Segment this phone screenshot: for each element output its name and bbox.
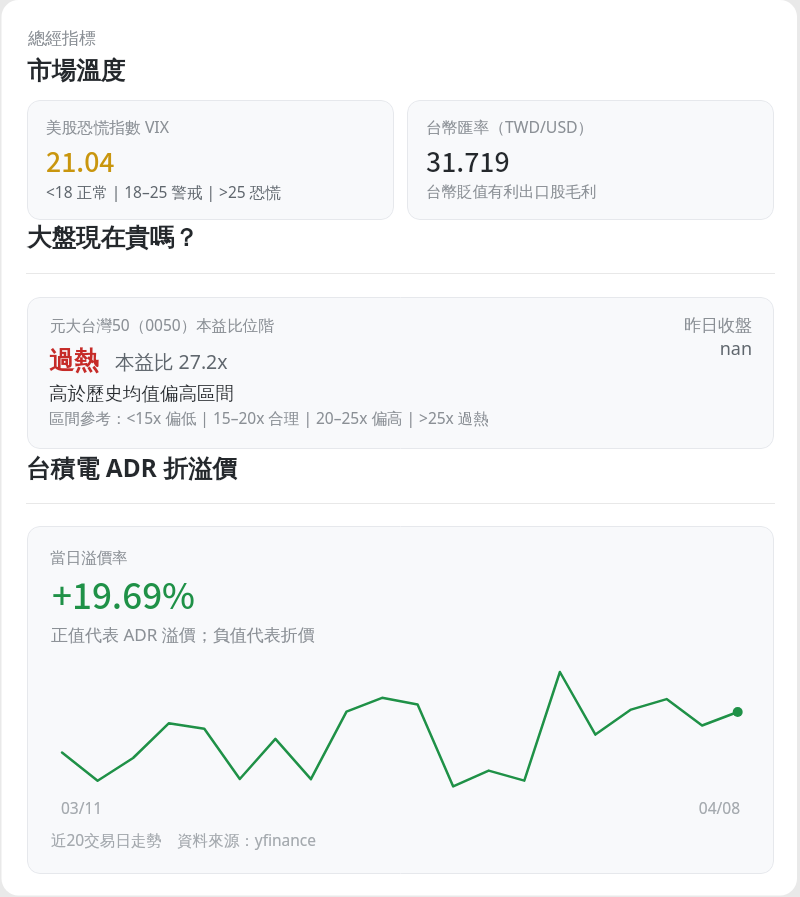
staticText: 台幣匯率（TWD/USD）	[426, 116, 594, 138]
staticText: 大盤現在貴嗎？	[27, 222, 199, 253]
button[interactable]: 台幣匯率 TWD/USD 31.719	[407, 100, 774, 220]
staticText: 本益比 27.2x	[115, 348, 228, 375]
staticText: 台幣貶值有利出口股毛利	[426, 182, 597, 202]
staticText: 過熱	[49, 345, 99, 376]
staticText: 正值代表 ADR 溢價；負值代表折價	[51, 623, 315, 646]
staticText: 區間參考：<15x 偏低 | 15–20x 合理 | 20–25x 偏高 | >…	[49, 407, 489, 428]
staticText: 當日溢價率	[50, 548, 128, 568]
staticText: +19.69%	[52, 569, 195, 625]
button[interactable]: 台積電 ADR 當日溢價率 +19.69%	[27, 526, 774, 874]
staticText: 市場溫度	[27, 55, 125, 86]
staticText: 21.04	[46, 141, 115, 184]
staticText: 近20交易日走勢 資料來源：yfinance	[51, 829, 317, 850]
staticText: 04/08	[540, 797, 740, 818]
staticText: <18 正常 | 18–25 警戒 | >25 恐慌	[46, 181, 281, 202]
staticText: 高於歷史均值偏高區間	[49, 382, 234, 405]
staticText: 元大台灣50（0050）本益比位階	[50, 314, 274, 335]
button[interactable]: 美股恐慌指數 VIX 21.04	[27, 100, 394, 220]
button[interactable]: 元大台灣50 本益比位階 過熱	[27, 297, 774, 449]
staticText: 美股恐慌指數 VIX	[46, 116, 169, 138]
staticText: 台積電 ADR 折溢價	[26, 451, 237, 484]
staticText: 總經指標	[28, 28, 96, 49]
staticText: 昨日收盤	[452, 315, 752, 336]
staticText: 31.719	[426, 141, 510, 184]
staticText: nan	[452, 336, 752, 361]
staticText: 03/11	[61, 797, 103, 818]
